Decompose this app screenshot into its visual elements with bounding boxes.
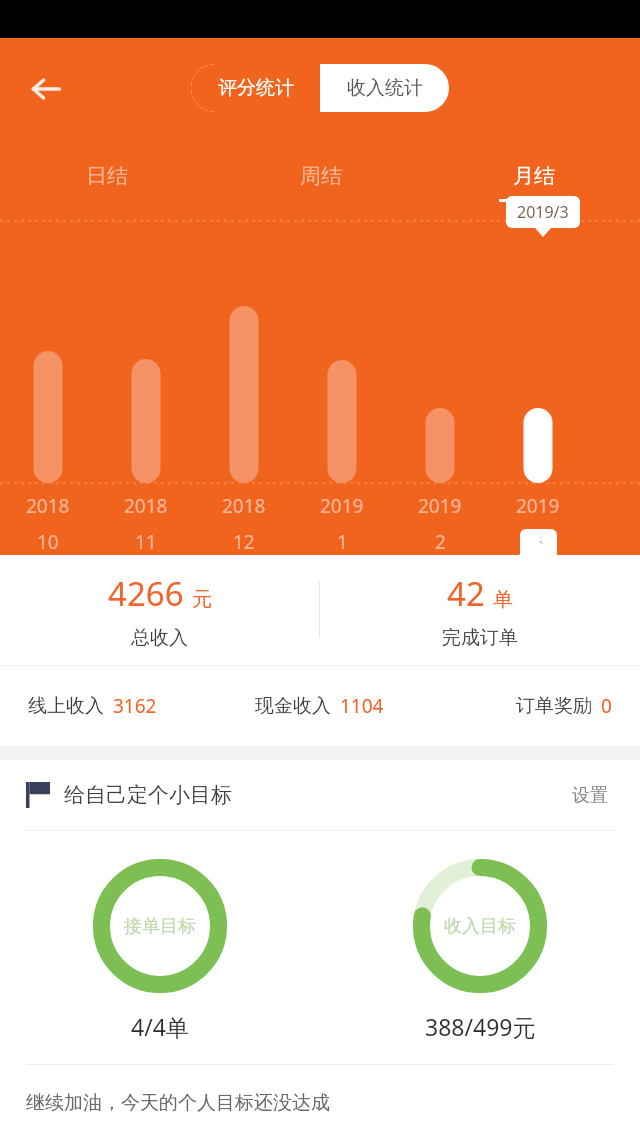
staticText: 2018 — [26, 493, 70, 519]
button[interactable]: 42 — [320, 571, 640, 650]
staticText: 4266 — [108, 571, 184, 616]
staticText: 接单目标 — [124, 915, 196, 938]
staticText: 12 — [233, 529, 255, 555]
staticText: 单 — [493, 587, 513, 612]
staticText: 设置 — [572, 784, 608, 807]
button[interactable]: 设置 — [566, 778, 614, 813]
staticText: 388/499元 — [425, 1011, 536, 1042]
staticText: 现金收入 — [255, 694, 331, 718]
staticText: 评分统计 — [218, 76, 294, 100]
staticText: 1104 — [340, 693, 384, 719]
staticText: 42 — [447, 571, 485, 616]
staticText: 2018 — [222, 493, 266, 519]
staticText: 3 — [533, 535, 544, 561]
staticText: 3162 — [113, 693, 157, 719]
staticText: 2019 — [516, 493, 560, 519]
staticText: 2019 — [418, 493, 462, 519]
staticText: 2018 — [124, 493, 168, 519]
staticText: 2019 — [320, 493, 364, 519]
staticText: 4/4单 — [131, 1011, 189, 1042]
button[interactable]: 评分统计 — [191, 64, 320, 112]
staticText: 总收入 — [131, 626, 188, 650]
button[interactable]: 接单目标 — [0, 859, 320, 1042]
staticText: 周结 — [300, 163, 342, 189]
staticText: 线上收入 — [28, 694, 104, 718]
staticText: 订单奖励 — [516, 694, 592, 718]
staticText: 0 — [601, 693, 612, 719]
staticText: 2019/3 — [517, 201, 569, 223]
staticText: 日结 — [86, 163, 128, 189]
button[interactable]: 周结 — [214, 151, 427, 207]
button[interactable]: 月结 — [427, 151, 640, 207]
staticText: 给自己定个小目标 — [64, 782, 232, 808]
staticText: 2 — [435, 529, 446, 555]
button[interactable]: 日结 — [0, 151, 214, 207]
button[interactable]: 4266 — [0, 571, 319, 650]
staticText: 月结 — [513, 163, 555, 189]
staticText: 元 — [192, 587, 212, 612]
staticText: 11 — [135, 529, 157, 555]
staticText: 收入目标 — [444, 915, 516, 938]
staticText: 10 — [37, 529, 59, 555]
staticText: 完成订单 — [442, 626, 518, 650]
staticText: 收入统计 — [347, 76, 423, 100]
button[interactable]: Back — [20, 63, 72, 115]
staticText: 继续加油，今天的个人目标还没达成 — [26, 1091, 330, 1115]
button[interactable]: 收入目标 — [320, 859, 640, 1042]
button[interactable]: 收入统计 — [320, 64, 449, 112]
staticText: 1 — [337, 529, 348, 555]
